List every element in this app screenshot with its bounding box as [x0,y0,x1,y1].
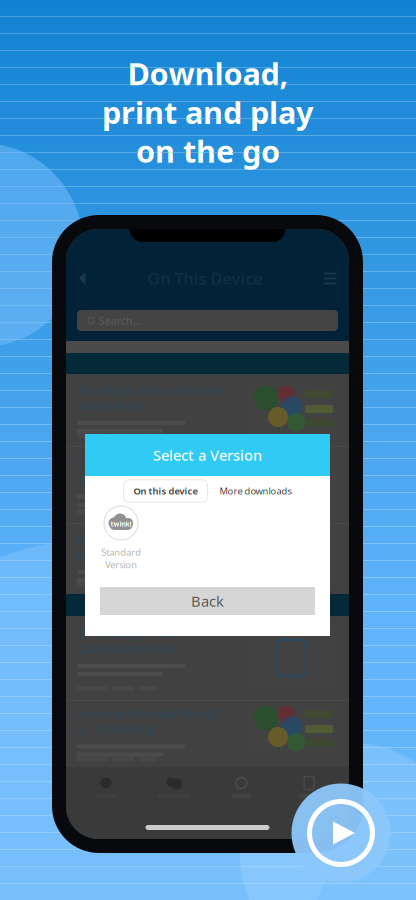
staticText: on the go [136,130,280,171]
staticText: More downloads [219,485,291,497]
staticText: Unicorn Number Bonds to 10 Activity [77,706,219,737]
staticText: Unicorn Themed Number Tracing Sheets [77,456,217,488]
staticText: Back [191,591,224,611]
staticText: Select a Version [153,445,262,465]
button[interactable]: On this device [123,480,207,502]
staticText: Standard Version [101,546,141,571]
staticText: print and play [102,92,314,132]
staticText: On this device [133,485,197,497]
staticText: Download, [127,53,288,94]
button[interactable]: Play preview video [291,783,390,882]
staticText: Rainbow Unicorn Display Lettering Pack [77,531,211,563]
staticText: twinkl [110,520,131,528]
staticText: On This Device [147,268,262,289]
staticText: Search... [99,313,142,328]
button[interactable]: Back [100,587,315,615]
staticText: Ten Magic Unicorns Free Taster Pack [77,382,223,414]
button[interactable]: More downloads [219,480,291,502]
staticText: The Great Unicorn Countdown Pack [77,625,186,657]
button[interactable]: twinkl [99,506,143,571]
